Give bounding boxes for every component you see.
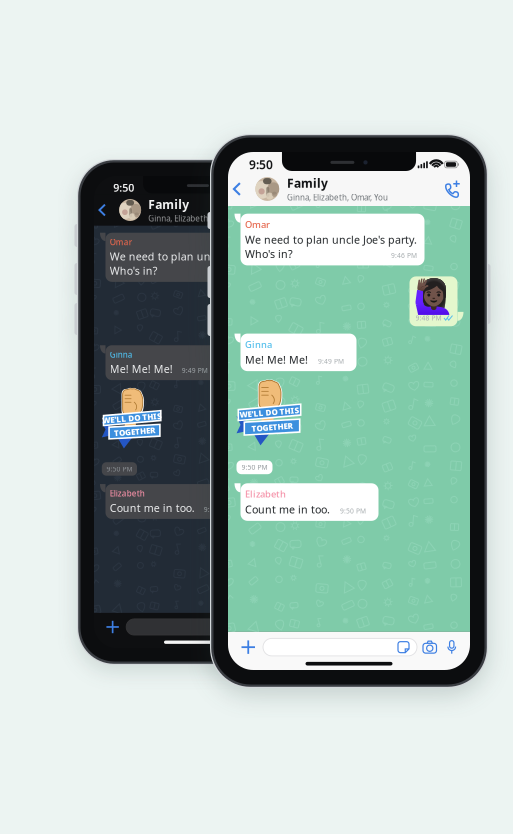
staticText: WE'LL DO THIS	[239, 407, 299, 418]
staticText: Who's in?	[245, 247, 293, 261]
staticText: Ginna, Elizabeth, Omar, You	[148, 213, 249, 224]
staticText: Family	[148, 196, 189, 212]
button[interactable]: Family	[228, 172, 470, 206]
staticText: 9:50 PM	[106, 464, 132, 473]
staticText: Me! Me! Me!	[110, 362, 173, 376]
button[interactable]: Message	[126, 619, 265, 635]
staticText: 9:50 PM	[340, 506, 366, 515]
staticText: Ginna	[245, 338, 272, 350]
button[interactable]: Family	[94, 194, 314, 226]
staticText: 9:50	[113, 180, 134, 195]
staticText: 9:49 PM	[182, 366, 208, 375]
staticText: 9:46 PM	[391, 251, 417, 260]
staticText: 9:50 PM	[241, 463, 267, 472]
button[interactable]: Message	[263, 638, 417, 656]
staticText: 9:49 PM	[318, 357, 344, 366]
staticText: Who's in?	[110, 263, 158, 278]
staticText: Count me in too.	[110, 501, 195, 515]
staticText: 🙋🏿‍♀️	[412, 278, 454, 316]
staticText: Elizabeth	[245, 488, 286, 500]
button[interactable]: Voice message	[442, 639, 461, 656]
staticText: Ginna	[110, 349, 133, 360]
staticText: Family	[287, 175, 328, 191]
button[interactable]: Attach	[103, 618, 122, 636]
button[interactable]: Attach	[237, 637, 259, 657]
staticText: 9:50 PM	[204, 505, 230, 514]
staticText: We need to plan uncle Joe's party.	[110, 249, 282, 264]
button[interactable]: Camera	[265, 619, 289, 635]
staticText: 9:48 PM	[262, 326, 288, 335]
staticText: WE'LL DO THIS	[102, 413, 162, 423]
staticText: TOGETHER	[114, 426, 155, 437]
staticText: 9:50	[249, 156, 273, 172]
staticText: 9:48 PM	[415, 313, 441, 322]
staticText: Ginna, Elizabeth, Omar, You	[287, 192, 388, 203]
staticText: Count me in too.	[245, 502, 330, 516]
staticText: Omar	[245, 218, 270, 231]
button[interactable]: Camera	[417, 638, 442, 656]
staticText: TOGETHER	[251, 422, 292, 432]
button[interactable]: Voice message	[289, 619, 306, 635]
staticText: Elizabeth	[110, 488, 145, 499]
staticText: Me! Me! Me!	[245, 352, 308, 367]
staticText: Omar	[110, 237, 132, 247]
staticText: We need to plan uncle Joe's party.	[245, 233, 417, 247]
